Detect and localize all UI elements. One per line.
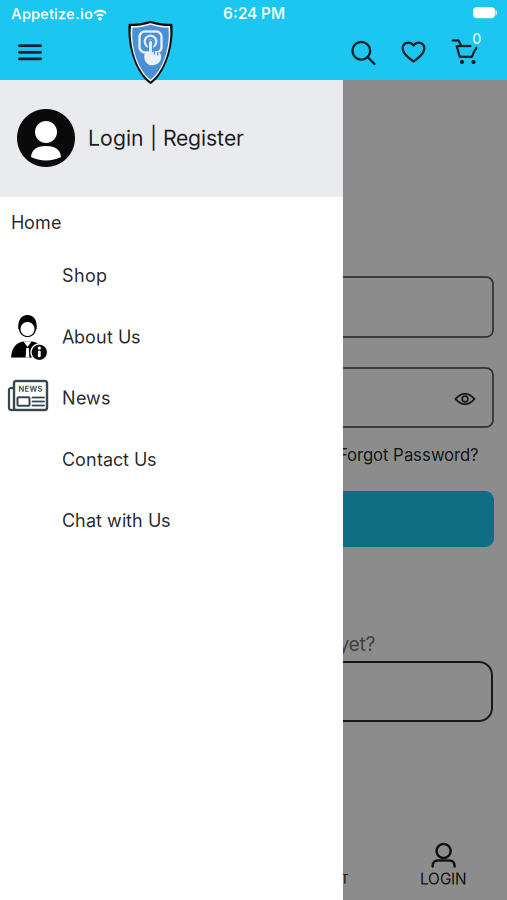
staticText: 6:24 PM [223,4,285,23]
staticText: CONTACT [284,871,349,887]
button[interactable]: About Us [62,315,331,359]
button[interactable]: LOGIN [414,841,474,887]
button[interactable]: Wishlist [401,41,425,62]
button[interactable]: Contact Us [62,437,331,481]
staticText: About Us [62,326,141,348]
button[interactable]: Forgot Password? [259,443,479,467]
button[interactable]: Login | Register [17,98,327,178]
button[interactable]: CONTACT [287,841,347,887]
button[interactable]: Search [351,40,377,66]
button[interactable]: Show password [447,381,483,417]
staticText: Contact Us [62,449,157,470]
staticText: LOGIN [420,870,467,888]
staticText: Don't have an account yet? [131,632,375,656]
button[interactable]: LOGIN [14,491,494,547]
staticText: Chat with Us [62,510,171,531]
staticText: Login | Register [88,125,244,151]
staticText: News [62,387,111,409]
button[interactable]: Home [11,200,331,244]
button[interactable]: Shop [62,253,331,297]
staticText: Home [11,212,61,233]
button[interactable]: Menu [18,44,42,60]
staticText: Forgot Password? [338,445,479,465]
button[interactable]: REGISTER [14,662,492,721]
staticText: Appetize.io [11,5,93,23]
button[interactable]: Home [127,18,173,85]
staticText: NEWS [18,384,42,393]
button[interactable]: Cart [451,33,485,71]
button[interactable]: Chat with Us [62,498,331,542]
button[interactable]: News [62,376,331,420]
staticText: 0 [472,30,481,47]
staticText: Shop [62,265,107,286]
